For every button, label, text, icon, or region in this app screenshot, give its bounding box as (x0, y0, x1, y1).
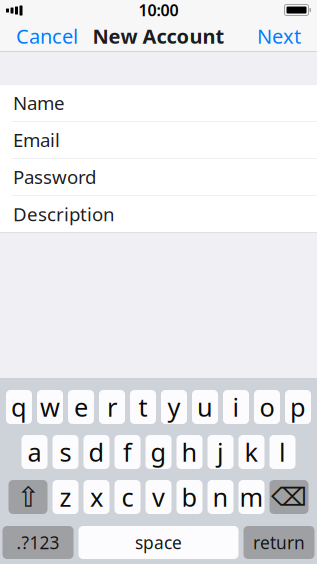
staticText: Email (13, 127, 60, 152)
button[interactable]: v (145, 480, 171, 514)
staticText: return (253, 531, 305, 554)
button[interactable]: y (161, 390, 187, 424)
staticText: New Account (92, 23, 224, 49)
button[interactable]: t (130, 390, 156, 424)
staticText: e (74, 390, 88, 424)
button[interactable]: z (52, 480, 78, 514)
staticText: x (90, 480, 103, 514)
staticText: m (239, 480, 263, 514)
button[interactable]: c (114, 480, 140, 514)
button[interactable]: o (254, 390, 280, 424)
button[interactable]: r (99, 390, 125, 424)
button[interactable]: p (285, 390, 311, 424)
button[interactable]: a (21, 435, 47, 469)
staticText: Name (13, 90, 65, 115)
staticText: o (259, 390, 274, 424)
button[interactable]: w (37, 390, 63, 424)
button[interactable]: b (176, 480, 202, 514)
button[interactable]: q (6, 390, 32, 424)
staticText: v (152, 480, 165, 514)
staticText: p (290, 390, 306, 424)
button[interactable]: n (207, 480, 233, 514)
button[interactable]: return (243, 526, 314, 559)
button[interactable]: e (68, 390, 94, 424)
button[interactable]: u (192, 390, 218, 424)
staticText: Password (13, 164, 96, 189)
button[interactable]: Next (247, 20, 311, 52)
staticText: Cancel (16, 23, 78, 49)
staticText: Next (257, 23, 301, 49)
staticText: space (135, 531, 182, 554)
staticText: f (123, 435, 132, 469)
button[interactable]: g (145, 435, 171, 469)
staticText: t (138, 390, 147, 424)
staticText: j (217, 435, 224, 469)
staticText: r (107, 390, 117, 424)
staticText: w (40, 390, 60, 424)
staticText: z (59, 480, 71, 514)
staticText: k (244, 435, 258, 469)
button[interactable]: m (238, 480, 264, 514)
button[interactable]: Name (0, 84, 317, 121)
button[interactable]: s (52, 435, 78, 469)
button[interactable]: Delete (269, 480, 308, 514)
button[interactable]: space (78, 526, 238, 559)
staticText: 10:00 (138, 0, 178, 21)
button[interactable]: Shift (8, 480, 47, 514)
staticText: g (150, 435, 166, 469)
button[interactable]: .?123 (2, 526, 73, 559)
staticText: Description (13, 202, 115, 226)
staticText: b (181, 480, 197, 514)
staticText: ⌫ (271, 483, 307, 511)
staticText: ⇧ (16, 481, 39, 513)
button[interactable]: l (269, 435, 295, 469)
staticText: n (212, 480, 228, 514)
staticText: y (167, 390, 180, 424)
staticText: a (27, 435, 41, 469)
staticText: q (11, 390, 27, 424)
button[interactable]: Password (0, 158, 317, 195)
button[interactable]: i (223, 390, 249, 424)
button[interactable]: d (83, 435, 109, 469)
staticText: c (121, 480, 133, 514)
staticText: d (88, 435, 104, 469)
staticText: s (59, 435, 71, 469)
button[interactable]: Description (0, 195, 317, 232)
button[interactable]: j (207, 435, 233, 469)
button[interactable]: x (83, 480, 109, 514)
staticText: .?123 (16, 531, 59, 554)
staticText: l (279, 435, 286, 469)
staticText: u (197, 390, 213, 424)
button[interactable]: h (176, 435, 202, 469)
button[interactable]: Email (0, 121, 317, 158)
staticText: h (181, 435, 197, 469)
button[interactable]: k (238, 435, 264, 469)
button[interactable]: Cancel (6, 20, 88, 52)
button[interactable]: f (114, 435, 140, 469)
staticText: i (232, 390, 239, 424)
